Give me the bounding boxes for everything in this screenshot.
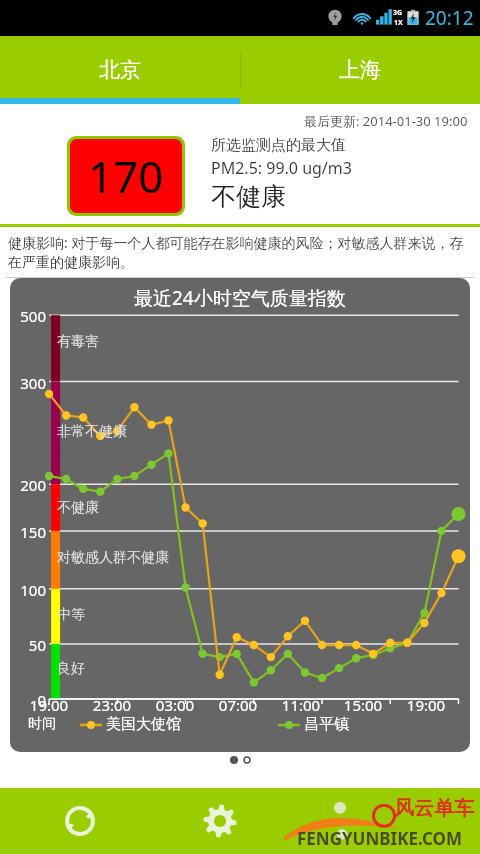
- staticText: 500: [10, 306, 46, 326]
- staticText: 50: [10, 635, 46, 655]
- staticText: 非常不健康: [57, 423, 127, 441]
- staticText: 北京: [99, 57, 141, 83]
- staticText: 200: [10, 475, 46, 495]
- staticText: PM2.5: 99.0 ug/m3: [211, 157, 352, 179]
- button[interactable]: Settings: [160, 788, 280, 854]
- staticText: 1X: [394, 18, 403, 28]
- staticText: FENGYUNBIKE.COM: [297, 827, 463, 850]
- staticText: 150: [10, 522, 46, 542]
- staticText: 0: [10, 690, 46, 710]
- staticText: 中等: [57, 606, 85, 624]
- staticText: 不健康: [57, 499, 99, 517]
- staticText: 23:00: [84, 695, 140, 715]
- staticText: 19:00: [398, 695, 454, 715]
- staticText: 20:12: [425, 5, 474, 31]
- staticText: 300: [10, 373, 46, 393]
- staticText: 时间: [28, 715, 56, 733]
- button[interactable]: 最近24小时空气质量指数: [10, 278, 470, 752]
- staticText: 11:00: [273, 695, 329, 715]
- staticText: 100: [10, 580, 46, 600]
- staticText: 07:00: [210, 695, 266, 715]
- staticText: 风云单车: [394, 796, 474, 821]
- staticText: 健康影响: 对于每一个人都可能存在影响健康的风险；对敏感人群来说，存在严重的健康…: [8, 233, 472, 271]
- staticText: 15:00: [335, 695, 391, 715]
- staticText: 最近24小时空气质量指数: [134, 285, 346, 311]
- staticText: 良好: [57, 660, 85, 678]
- staticText: 美国大使馆: [106, 715, 181, 734]
- staticText: 不健康: [211, 181, 286, 212]
- staticText: 170: [88, 146, 164, 206]
- staticText: 上海: [339, 57, 381, 83]
- staticText: 昌平镇: [304, 715, 349, 734]
- staticText: 19:00: [21, 695, 77, 715]
- button[interactable]: Refresh: [0, 788, 160, 854]
- staticText: 对敏感人群不健康: [57, 549, 169, 567]
- button[interactable]: 上海: [240, 36, 480, 104]
- staticText: 03:00: [147, 695, 203, 715]
- button[interactable]: FengYunBike: [280, 788, 480, 854]
- staticText: 所选监测点的最大值: [211, 136, 346, 155]
- button[interactable]: 北京: [0, 36, 240, 104]
- staticText: 最后更新: 2014-01-30 19:00: [304, 112, 468, 130]
- staticText: 3G: [393, 8, 403, 18]
- staticText: 有毒害: [57, 333, 99, 351]
